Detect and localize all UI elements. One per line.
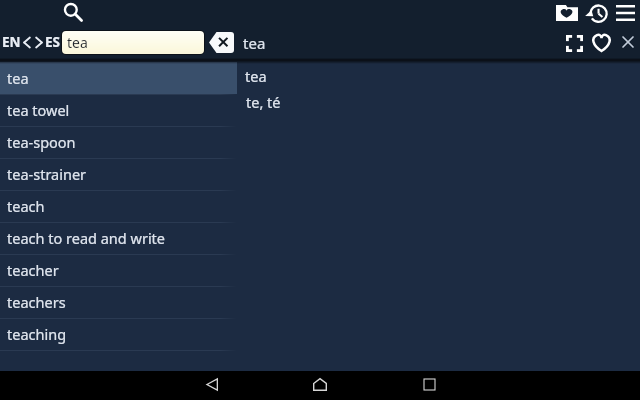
button[interactable]: tea-spoon [0,126,237,158]
button[interactable]: Favorites folder [554,0,580,26]
staticText: tea towel [7,100,70,120]
button[interactable]: Close [617,31,639,53]
button[interactable]: Home [300,371,340,398]
button[interactable]: teachers [0,286,237,318]
button[interactable]: tea towel [0,94,237,126]
staticText: tea [7,68,29,88]
button[interactable]: teacher [0,254,237,286]
button[interactable]: teach to read and write [0,222,237,254]
button[interactable]: tea-strainer [0,158,237,190]
button[interactable]: Recents [409,371,449,398]
button[interactable]: EN [2,31,60,53]
staticText: te, té [246,92,281,112]
button[interactable]: teach [0,190,237,222]
staticText: tea-spoon [7,132,76,152]
button[interactable]: Search [61,0,86,25]
button[interactable]: Back [192,371,232,398]
button[interactable]: Clear [209,32,234,53]
button[interactable]: Menu [612,0,638,26]
staticText: teaching [7,324,67,344]
button[interactable]: teaching [0,318,237,350]
staticText: teacher [7,260,59,280]
button[interactable]: Add to favorites [589,30,614,55]
staticText: teachers [7,292,66,312]
staticText: tea [243,33,266,53]
button[interactable]: tea [0,62,237,94]
staticText: teach [7,196,45,216]
button[interactable]: Fullscreen [562,31,586,55]
staticText: teach to read and write [7,228,166,248]
staticText: tea [245,66,267,86]
staticText: EN [2,33,21,51]
button[interactable]: History [584,0,610,26]
staticText: ES [45,33,60,51]
button[interactable]: tea [62,31,204,54]
staticText: tea [67,33,88,52]
staticText: tea-strainer [7,164,87,184]
